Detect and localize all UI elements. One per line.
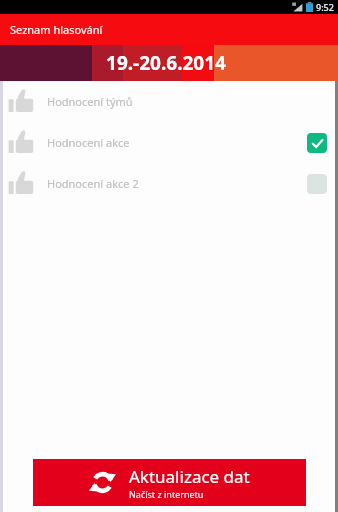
- staticText: Aktualizace dat: [129, 465, 250, 488]
- other: Refresh: [89, 469, 116, 496]
- staticText: Seznam hlasování: [10, 22, 103, 37]
- staticText: Hodnocení akce: [47, 135, 130, 150]
- button[interactable]: Refresh: [33, 459, 306, 506]
- staticText: 9:52: [316, 1, 334, 13]
- button[interactable]: Hodnocení akce: [3, 122, 335, 163]
- button[interactable]: Checked: [307, 133, 327, 153]
- staticText: Hodnocení akce 2: [47, 176, 139, 191]
- staticText: Načíst z internetu: [129, 488, 204, 500]
- button[interactable]: Hodnocení týmů: [3, 81, 335, 122]
- button[interactable]: 19.-20.6.2014: [0, 45, 338, 81]
- button[interactable]: Unchecked: [307, 174, 327, 194]
- staticText: 19.-20.6.2014: [106, 50, 226, 76]
- button[interactable]: Hodnocení akce 2: [3, 163, 335, 204]
- staticText: Hodnocení týmů: [47, 94, 133, 109]
